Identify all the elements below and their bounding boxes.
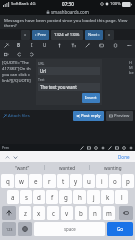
button[interactable]: Prev <box>2 145 9 150</box>
staticText: wanting <box>104 165 122 171</box>
button[interactable]: Editor tool 11 <box>2 50 10 58</box>
button[interactable]: Backspace <box>119 206 133 220</box>
staticText: d <box>37 193 41 201</box>
button[interactable]: h <box>73 190 86 204</box>
staticText: » <box>108 32 111 38</box>
button[interactable]: Editor tool 13 <box>27 50 35 58</box>
staticText: 07:30 <box>62 1 74 7</box>
staticText: o <box>113 177 117 185</box>
button[interactable]: g <box>59 190 72 204</box>
button[interactable]: Post reply <box>73 111 104 121</box>
button[interactable]: wanting <box>90 162 135 173</box>
button[interactable]: Next › <box>85 30 103 40</box>
staticText: 4G <box>30 1 36 7</box>
staticText: 1324 of 1336 <box>54 32 80 38</box>
button[interactable]: u <box>83 174 95 188</box>
button[interactable]: Next field <box>11 153 19 161</box>
button[interactable]: Action 7 <box>121 145 126 150</box>
button[interactable]: Editor tool 1 <box>2 41 10 49</box>
button[interactable]: Url <box>38 67 100 75</box>
button[interactable]: Editor tool 9 <box>111 41 119 49</box>
staticText: Text <box>38 77 45 82</box>
button[interactable]: 1324 of 1336 <box>51 30 83 40</box>
button[interactable]: Insert <box>82 93 100 103</box>
button[interactable]: Attach files <box>2 112 31 120</box>
button[interactable]: Go <box>107 222 133 236</box>
button[interactable]: Shift <box>2 206 16 220</box>
staticText: m <box>106 209 112 217</box>
staticText: Preview <box>114 113 130 119</box>
button[interactable]: Action 6 <box>114 145 119 150</box>
button[interactable]: w <box>15 174 28 188</box>
button[interactable]: » <box>105 30 114 40</box>
button[interactable]: v <box>61 206 73 220</box>
staticText: M <box>129 65 133 70</box>
button[interactable]: ‹ Prev <box>32 30 49 40</box>
staticText: ‹ Prev <box>35 32 46 38</box>
button[interactable]: p <box>122 174 134 188</box>
button[interactable]: Editor tool 6 <box>69 41 77 49</box>
staticText: wanted <box>59 165 76 171</box>
button[interactable]: k <box>101 190 114 204</box>
button[interactable]: Action 2 <box>86 145 91 150</box>
button[interactable]: z <box>19 206 31 220</box>
staticText: space <box>64 226 76 232</box>
button[interactable]: Preview <box>106 111 133 121</box>
button[interactable]: Done <box>116 153 132 161</box>
staticText: z <box>24 209 27 217</box>
button[interactable]: Messages have been posted since you load… <box>0 15 135 29</box>
button[interactable]: m <box>103 206 115 220</box>
button[interactable]: x <box>33 206 45 220</box>
button[interactable]: space <box>34 222 105 236</box>
button[interactable]: Action 4 <box>100 145 105 150</box>
button[interactable]: Action 8 <box>128 145 133 150</box>
staticText: Go <box>117 226 124 232</box>
staticText: be <box>129 70 134 75</box>
button[interactable]: “want” <box>0 162 45 173</box>
button[interactable]: l <box>115 190 128 204</box>
button[interactable]: j <box>87 190 100 204</box>
button[interactable]: r <box>43 174 56 188</box>
staticText: 417383"]On th <box>2 66 31 72</box>
button[interactable]: Action 1 <box>79 145 84 150</box>
button[interactable]: o <box>109 174 121 188</box>
button[interactable]: Editor tool 7 <box>83 41 91 49</box>
button[interactable]: y <box>70 174 82 188</box>
button[interactable]: Editor tool 3 <box>28 41 36 49</box>
button[interactable]: f <box>46 190 58 204</box>
button[interactable]: Switch keyboard <box>18 222 32 236</box>
staticText: “want” <box>15 165 30 171</box>
staticText: b <box>79 209 83 217</box>
button[interactable]: Previous field <box>3 153 11 161</box>
button[interactable]: c <box>47 206 59 220</box>
button[interactable]: Editor tool 12 <box>15 50 23 58</box>
staticText: n <box>93 209 97 217</box>
button[interactable]: Numbers <box>2 222 16 236</box>
button[interactable]: Action 5 <box>107 145 112 150</box>
button[interactable]: Editor tool 5 <box>55 41 63 49</box>
staticText: a <box>11 193 15 201</box>
button[interactable]: i <box>96 174 108 188</box>
button[interactable]: e <box>29 174 42 188</box>
button[interactable]: Editor tool 10 <box>125 41 133 49</box>
staticText: Insert <box>85 95 97 101</box>
button[interactable]: d <box>33 190 45 204</box>
button[interactable]: Action 3 <box>93 145 98 150</box>
staticText: Next › <box>88 32 100 38</box>
button[interactable]: s <box>20 190 32 204</box>
button[interactable]: b <box>75 206 87 220</box>
staticText: « <box>24 32 27 38</box>
staticText: SoftBank <box>11 1 29 7</box>
button[interactable]: Editor tool 2 <box>15 41 23 49</box>
button[interactable]: Editor tool 4 <box>41 41 49 49</box>
button[interactable]: wanted <box>45 162 90 173</box>
button[interactable]: The text you want <box>38 83 100 91</box>
button[interactable]: n <box>89 206 101 220</box>
button[interactable]: a <box>7 190 19 204</box>
button[interactable]: t <box>57 174 69 188</box>
staticText: p <box>126 177 130 185</box>
button[interactable]: « <box>21 30 30 40</box>
staticText: r <box>48 177 51 185</box>
button[interactable]: q <box>1 174 14 188</box>
button[interactable]: Editor tool 8 <box>97 41 105 49</box>
